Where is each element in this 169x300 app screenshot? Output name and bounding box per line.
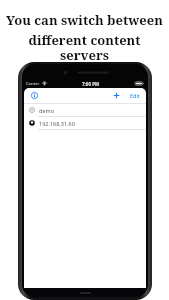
button[interactable]: 192.168.31.60 xyxy=(24,117,146,129)
button[interactable]: Edit xyxy=(129,90,141,101)
staticText: different content servers xyxy=(6,31,163,64)
staticText: Edit xyxy=(130,92,140,99)
staticText: You can switch between xyxy=(6,11,163,29)
button[interactable]: Add server xyxy=(111,90,122,101)
staticText: Carrier xyxy=(26,81,40,86)
staticText: demo xyxy=(39,107,54,114)
staticText: 192.168.31.60 xyxy=(39,120,75,127)
staticText: 7:00 PM xyxy=(82,81,100,87)
button[interactable]: Info xyxy=(29,90,40,101)
button[interactable]: demo xyxy=(24,104,146,116)
